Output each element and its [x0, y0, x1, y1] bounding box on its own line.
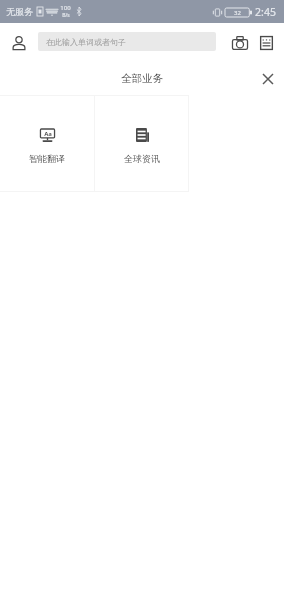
staticText: 2:45: [255, 5, 276, 19]
staticText: Aa: [44, 130, 52, 138]
staticText: 全部业务: [121, 72, 163, 85]
staticText: 在此输入单词或者句子: [46, 37, 126, 47]
staticText: 100: [60, 4, 71, 12]
button[interactable]: Aa: [0, 95, 94, 192]
button[interactable]: Notes: [248, 23, 284, 60]
button[interactable]: 在此输入单词或者句子: [38, 32, 216, 51]
button[interactable]: Camera: [216, 23, 248, 60]
staticText: 32: [234, 9, 241, 17]
button[interactable]: Account: [0, 23, 38, 60]
button[interactable]: Close: [252, 62, 284, 94]
staticText: 无服务: [6, 6, 33, 17]
staticText: B/s: [62, 12, 70, 19]
staticText: 全球资讯: [124, 153, 160, 164]
button[interactable]: 全球资讯: [94, 95, 189, 192]
staticText: 智能翻译: [29, 153, 65, 164]
